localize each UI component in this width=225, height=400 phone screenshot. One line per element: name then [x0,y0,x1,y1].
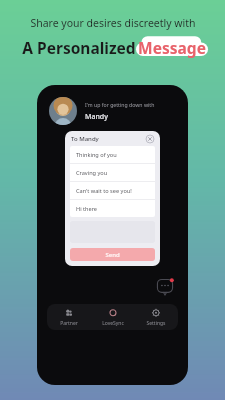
staticText: Can't wait to see you! [76,187,132,195]
staticText: Message [138,37,206,58]
staticText: Partner [60,320,78,327]
button[interactable]: Can't wait to see you! [70,182,155,199]
button[interactable]: I'm up for getting down with [49,97,176,125]
staticText: LoveSync [102,320,124,327]
button[interactable]: Close [146,135,154,143]
button[interactable]: Hi there [70,200,155,217]
staticText: Thinking of you [76,151,117,159]
button[interactable]: Thinking of you [70,146,155,163]
button[interactable]: Partner [48,305,90,330]
staticText: Settings [146,320,166,327]
staticText: To Mandy [71,135,99,143]
button[interactable]: Send [70,248,155,261]
staticText: Send [105,251,120,259]
button[interactable]: Messages [156,278,174,296]
staticText: Hi there [76,205,98,213]
button[interactable]: LoveSync [92,305,134,330]
staticText: Mandy [85,112,108,122]
staticText: I'm up for getting down with [85,101,155,108]
staticText: A Personalized [20,37,138,58]
button[interactable]: Settings [135,305,177,330]
staticText: Craving you [76,169,108,177]
staticText: Share your desires discreetly with [30,16,196,30]
button[interactable]: Craving you [70,164,155,181]
